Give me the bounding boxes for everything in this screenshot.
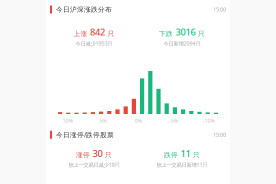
staticText: 15:00	[213, 6, 226, 13]
staticText: 0%	[134, 117, 141, 124]
button[interactable]: 今日沪深涨跌分布	[50, 5, 226, 14]
staticText: 较上一交易日减少19只	[68, 161, 119, 168]
staticText: 今日涨停/跌停股票	[56, 130, 114, 139]
staticText: 跌停	[164, 151, 178, 159]
staticText: 842	[90, 26, 105, 38]
staticText: 15:00	[213, 131, 226, 138]
staticText: 10%	[63, 117, 73, 124]
staticText: 只	[105, 151, 112, 159]
staticText: 11	[180, 147, 190, 160]
staticText: -10%	[202, 117, 214, 124]
staticText: 今日减少1953只	[75, 40, 112, 47]
staticText: 今日沪深涨跌分布	[56, 5, 112, 14]
staticText: 30	[92, 147, 102, 160]
staticText: 涨停	[76, 151, 90, 159]
staticText: 今日新增2094只	[163, 40, 200, 47]
button[interactable]: 今日涨停/跌停股票	[50, 130, 226, 139]
staticText: 只	[193, 151, 200, 159]
staticText: 较上一交易日新增11只	[156, 161, 207, 168]
staticText: 3016	[175, 26, 195, 38]
staticText: 只	[198, 29, 205, 38]
staticText: 只	[107, 29, 114, 38]
staticText: 5%	[99, 117, 106, 124]
staticText: 上涨	[73, 29, 87, 38]
staticText: -5%	[169, 117, 178, 124]
staticText: 下跌	[159, 29, 173, 38]
